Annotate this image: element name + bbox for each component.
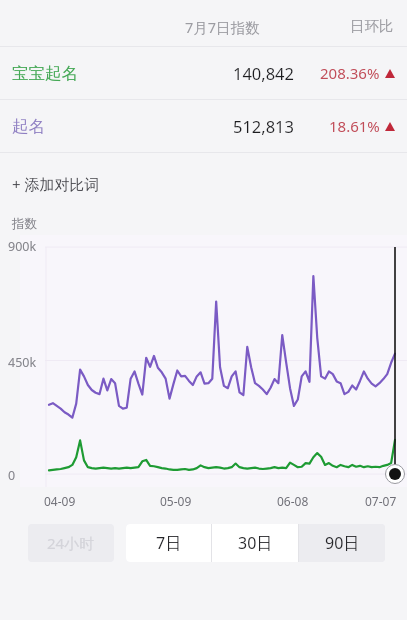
staticText: 07-07 [365,493,397,509]
button[interactable]: 30日 [212,524,298,562]
staticText: 7日 [156,532,182,554]
staticText: 指数 [12,216,37,232]
staticText: 04-09 [44,493,76,509]
staticText: 起名 [12,116,132,137]
button[interactable]: 24小时 [28,524,114,562]
staticText: 日环比 [350,17,394,35]
button[interactable]: 7日 [126,524,211,562]
staticText: 208.36% [320,63,380,83]
staticText: 450k [8,354,37,371]
staticText: 140,842 [132,62,294,84]
staticText: 05-09 [160,493,192,509]
staticText: 24小时 [47,533,95,553]
staticText: 06-08 [277,493,309,509]
staticText: 7月7日指数 [185,17,260,37]
staticText: 30日 [238,532,273,554]
button[interactable]: 起名 [0,100,407,152]
staticText: + 添加对比词 [12,174,100,194]
button[interactable]: 宝宝起名 [0,47,407,99]
button[interactable]: 90日 [299,524,385,562]
staticText: 0 [8,467,16,484]
staticText: 宝宝起名 [12,63,132,84]
staticText: 900k [8,238,37,255]
staticText: 90日 [325,532,360,554]
button[interactable]: + 添加对比词 [0,153,407,214]
staticText: 18.61% [329,116,380,136]
staticText: 512,813 [132,115,294,137]
